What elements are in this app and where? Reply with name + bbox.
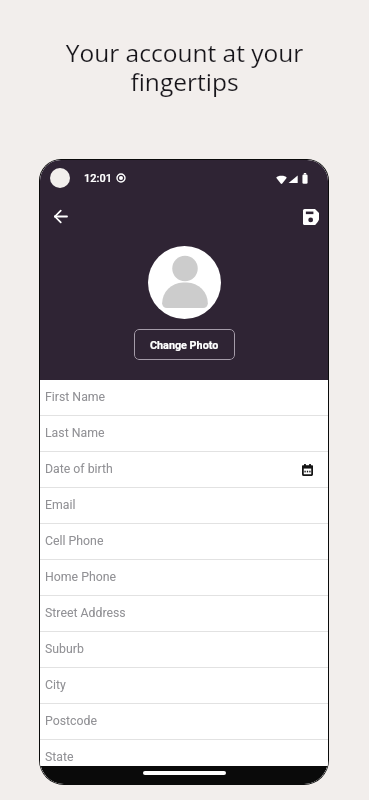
staticText: Date of birth (45, 462, 113, 476)
staticText: Change Photo (150, 339, 219, 352)
staticText: Your account at your fingertips (30, 36, 339, 98)
staticText: State (45, 750, 74, 764)
button[interactable]: Back (47, 199, 77, 229)
staticText: First Name (45, 390, 106, 404)
staticText: Last Name (45, 426, 105, 440)
button[interactable]: Last Name (40, 416, 328, 452)
staticText: Postcode (45, 714, 97, 728)
button[interactable]: Cell Phone (40, 524, 328, 560)
staticText: Cell Phone (45, 534, 104, 548)
button[interactable]: Street Address (40, 596, 328, 632)
button[interactable]: Date of birth (40, 452, 328, 488)
button[interactable]: First Name (40, 380, 328, 416)
button[interactable]: Home Phone (40, 560, 328, 596)
button[interactable]: Email (40, 488, 328, 524)
button[interactable]: Postcode (40, 704, 328, 740)
button[interactable]: State (40, 740, 328, 776)
button[interactable]: Change Photo (134, 329, 235, 360)
staticText: Street Address (45, 606, 126, 620)
button[interactable]: Suburb (40, 632, 328, 668)
button[interactable]: City (40, 668, 328, 704)
staticText: Suburb (45, 642, 84, 656)
staticText: 12:01 (84, 172, 112, 185)
staticText: Email (45, 498, 76, 512)
button[interactable]: Save (290, 199, 320, 229)
staticText: Home Phone (45, 570, 116, 584)
staticText: City (45, 678, 66, 692)
